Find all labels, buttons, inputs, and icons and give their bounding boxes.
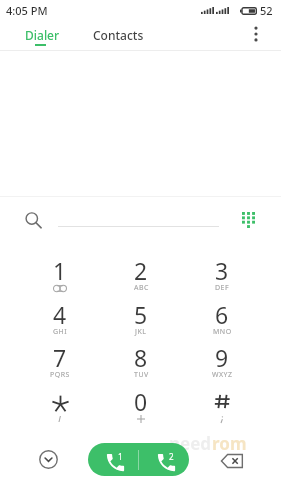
button[interactable]: 3 [182,248,262,291]
staticText: 0 [134,386,148,413]
staticText: WXYZ [212,370,233,380]
staticText: Contacts [93,27,144,43]
button[interactable]: Dialpad [235,207,261,233]
button[interactable]: More options [242,20,270,48]
button[interactable]: Call with SIM 1 [88,443,138,476]
button[interactable]: 8 [101,335,181,378]
button[interactable]: 0 [101,379,181,422]
staticText: 9 [215,342,229,369]
staticText: need [169,432,212,455]
button[interactable]: 4 [20,292,100,335]
button[interactable]: 6 [182,292,262,335]
staticText: 52 [260,3,273,18]
staticText: DEF [215,283,230,293]
staticText: JKL [135,327,147,337]
staticText: 4:05 PM [6,3,48,18]
button[interactable]: 1 [20,248,100,291]
staticText: 5 [134,299,148,326]
button[interactable]: 2 [101,248,181,291]
button[interactable]: Search [20,207,45,232]
staticText: TUV [134,370,149,380]
staticText: Dialer [25,27,60,43]
staticText: 7 [53,342,67,369]
button[interactable] [20,379,100,422]
staticText: GHI [53,327,68,337]
staticText: 2 [169,451,174,462]
staticText: 4 [53,299,67,326]
button[interactable]: Call with SIM 2 [139,443,189,476]
button[interactable]: 7 [20,335,100,378]
staticText: PQRS [50,370,70,380]
staticText: 1 [53,255,67,282]
button[interactable]: 5 [101,292,181,335]
staticText: 2 [134,255,148,282]
staticText: 8 [134,342,148,369]
button[interactable]: Backspace [217,446,247,475]
button[interactable]: Contacts [93,27,144,43]
staticText: 1 [118,451,123,462]
button[interactable]: 9 [182,335,262,378]
button[interactable] [182,379,262,422]
staticText: MNO [213,327,232,337]
button[interactable]: Hide dialpad [34,445,62,473]
staticText: 3 [215,255,229,282]
staticText: ABC [134,283,149,293]
staticText: rom [212,432,247,455]
staticText: 6 [215,299,229,326]
button[interactable]: Dialer [25,27,60,43]
